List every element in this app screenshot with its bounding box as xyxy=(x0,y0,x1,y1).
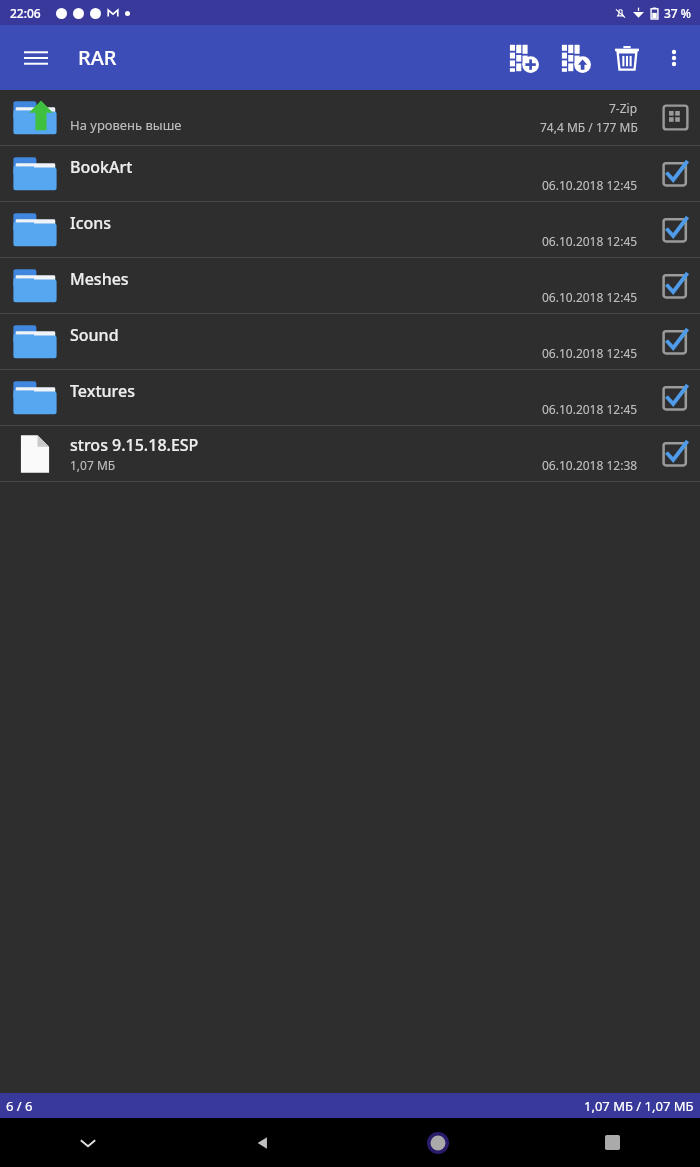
button[interactable]: Select Sound xyxy=(650,314,700,369)
staticText: 1,07 МБ xyxy=(70,457,116,473)
staticText: stros 9.15.18.ESP xyxy=(70,434,199,456)
staticText: 22:06 xyxy=(10,5,41,21)
staticText: 06.10.2018 12:45 xyxy=(542,345,638,361)
button[interactable]: Select Icons xyxy=(650,202,700,257)
button[interactable]: BookArt xyxy=(0,146,700,201)
button[interactable]: Back xyxy=(175,1118,350,1167)
button[interactable]: Textures xyxy=(0,370,700,425)
button[interactable]: Home xyxy=(350,1118,525,1167)
staticText: Textures xyxy=(70,380,135,402)
button[interactable]: Select stros 9.15.18.ESP xyxy=(650,426,700,481)
staticText: Icons xyxy=(70,212,112,234)
button[interactable]: Add to archive xyxy=(498,32,550,84)
button[interactable]: Sound xyxy=(0,314,700,369)
button[interactable]: Icons xyxy=(0,202,700,257)
button[interactable]: More options xyxy=(652,36,696,80)
staticText: 06.10.2018 12:45 xyxy=(542,233,638,249)
button[interactable]: Select Meshes xyxy=(650,258,700,313)
button[interactable]: Menu xyxy=(12,34,60,82)
button[interactable]: Recent apps xyxy=(525,1118,700,1167)
staticText: BookArt xyxy=(70,156,133,178)
staticText: 1,07 МБ / 1,07 МБ xyxy=(584,1097,694,1115)
staticText: 06.10.2018 12:45 xyxy=(542,289,638,305)
staticText: 7-Zip xyxy=(609,100,638,116)
button[interactable]: Extract archive xyxy=(550,32,602,84)
staticText: 37 % xyxy=(664,5,692,21)
button[interactable]: Delete xyxy=(602,33,652,83)
button[interactable]: Select Textures xyxy=(650,370,700,425)
staticText: 74,4 МБ / 177 МБ xyxy=(540,119,638,135)
staticText: Sound xyxy=(70,324,119,346)
staticText: 06.10.2018 12:45 xyxy=(542,177,638,193)
staticText: 06.10.2018 12:38 xyxy=(542,457,638,473)
button[interactable]: Select BookArt xyxy=(650,146,700,201)
button[interactable]: Meshes xyxy=(0,258,700,313)
staticText: 06.10.2018 12:45 xyxy=(542,401,638,417)
staticText: На уровень выше xyxy=(70,116,540,134)
button[interactable]: View mode xyxy=(650,90,700,145)
button[interactable]: stros 9.15.18.ESP xyxy=(0,426,700,481)
staticText: RAR xyxy=(78,44,117,71)
staticText: Meshes xyxy=(70,268,129,290)
button[interactable]: На уровень выше xyxy=(0,90,700,145)
staticText: 6 / 6 xyxy=(6,1097,33,1115)
button[interactable]: Hide keyboard xyxy=(0,1118,175,1167)
